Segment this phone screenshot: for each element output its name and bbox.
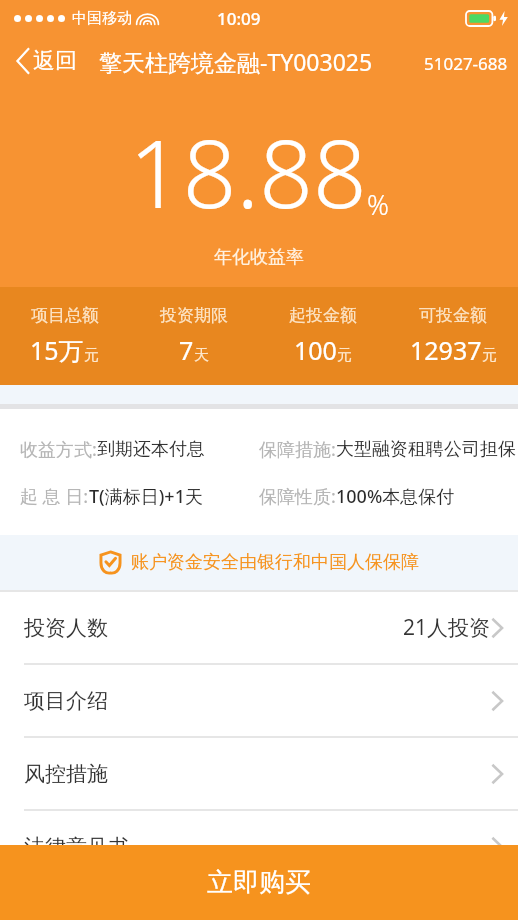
staticText: 年化收益率 — [214, 246, 304, 269]
button[interactable]: 返回 — [12, 43, 81, 79]
staticText: 100%本息保付 — [336, 484, 455, 509]
staticText: 到期还本付息 — [97, 438, 205, 461]
staticText: 51027-688 — [424, 52, 508, 75]
staticText: 10:09 — [217, 7, 261, 30]
staticText: 元 — [337, 346, 352, 365]
staticText: 投资期限 — [160, 305, 228, 326]
staticText: 天 — [194, 346, 209, 365]
staticText: 项目介绍 — [24, 688, 108, 714]
button[interactable]: 风控措施 — [0, 738, 518, 809]
staticText: 中国移动 — [72, 9, 132, 28]
staticText: 投资人数 — [24, 615, 108, 641]
staticText: 风控措施 — [24, 761, 108, 787]
staticText: 法律意见书 — [24, 834, 129, 860]
staticText: 元 — [84, 346, 99, 365]
staticText: 保障性质: — [259, 484, 336, 509]
staticText: 项目总额 — [31, 305, 99, 326]
staticText: 15万 — [30, 333, 84, 367]
staticText: 保障措施: — [259, 437, 336, 462]
button[interactable]: 投资人数 — [0, 592, 518, 663]
staticText: 起投金额 — [289, 305, 357, 326]
button[interactable]: 项目介绍 — [0, 665, 518, 736]
staticText: 立即购买 — [207, 866, 311, 899]
staticText: 100 — [294, 333, 337, 367]
staticText: 21人投资 — [403, 613, 491, 642]
button[interactable]: 立即购买 — [0, 845, 518, 920]
staticText: 起 息 日: — [20, 484, 89, 509]
staticText: % — [367, 186, 389, 223]
staticText: 元 — [482, 346, 497, 365]
staticText: 大型融资租聘公司担保 — [336, 438, 516, 461]
staticText: 可投金额 — [419, 305, 487, 326]
button[interactable]: 法律意见书 — [0, 811, 518, 882]
staticText: 12937 — [410, 333, 482, 367]
staticText: 返回 — [33, 47, 77, 75]
staticText: 账户资金安全由银行和中国人保保障 — [131, 551, 419, 574]
staticText: 收益方式: — [20, 437, 97, 462]
staticText: 擎天柱跨境金融-TY003025 — [99, 46, 373, 77]
staticText: 18.88 — [129, 108, 367, 236]
staticText: T(满标日)+1天 — [89, 484, 203, 509]
staticText: 7 — [179, 333, 194, 367]
